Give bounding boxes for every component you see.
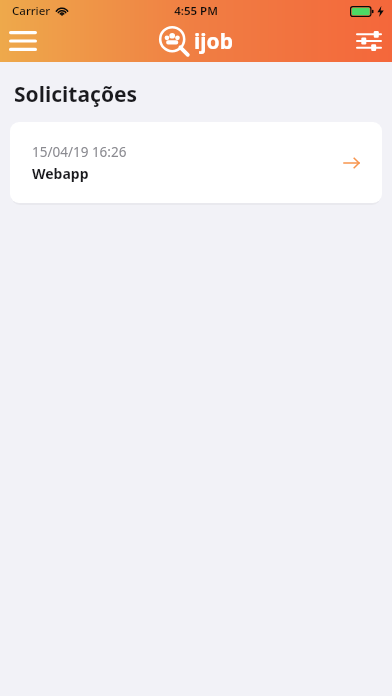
button[interactable]: Filtros (346, 24, 392, 58)
staticText: 15/04/19 16:26 (32, 143, 127, 161)
button[interactable]: ijob (159, 26, 233, 56)
staticText: Webapp (32, 164, 89, 183)
other: Abrir solicitação (342, 154, 360, 172)
staticText: ijob (194, 27, 233, 56)
staticText: 4:55 PM (174, 3, 218, 19)
button[interactable]: Menu (0, 24, 46, 58)
staticText: Carrier (12, 3, 51, 19)
button[interactable]: 15/04/19 16:26 (10, 122, 382, 203)
staticText: Solicitações (14, 80, 138, 109)
